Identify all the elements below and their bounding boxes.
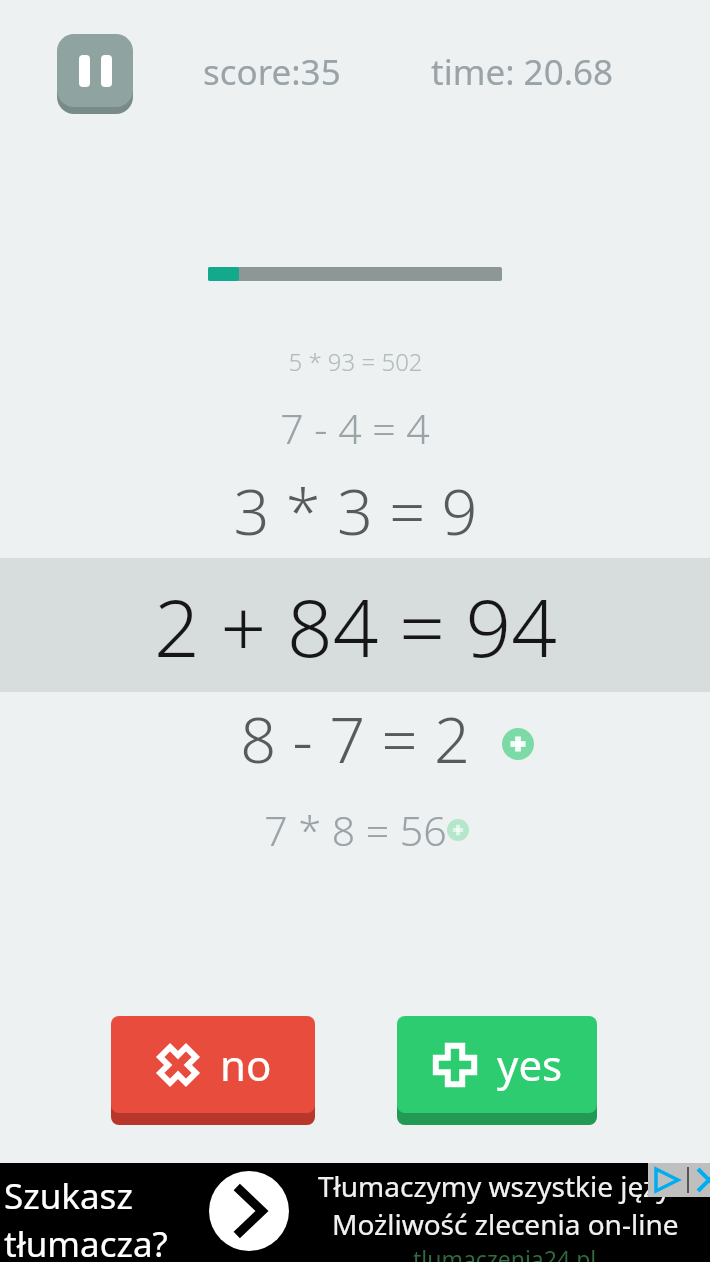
button[interactable]: no xyxy=(111,1016,315,1125)
button[interactable]: Pause xyxy=(57,34,133,114)
staticText: time: 20.68 xyxy=(431,48,614,96)
staticText: 7 * 8 = 56 xyxy=(264,802,447,858)
staticText: tlumaczenia24.pl xyxy=(413,1243,597,1262)
staticText: 2 + 84 = 94 xyxy=(154,571,557,680)
staticText: Szukasz xyxy=(4,1172,133,1220)
staticText: no xyxy=(220,1036,272,1093)
staticText: 5 * 93 = 502 xyxy=(288,345,423,378)
staticText: score:35 xyxy=(203,48,341,96)
button[interactable]: yes xyxy=(397,1016,597,1125)
button[interactable] xyxy=(0,558,710,692)
staticText: Możliwość zlecenia on-line xyxy=(332,1205,679,1243)
button[interactable]: Ad choices xyxy=(648,1163,710,1197)
staticText: yes xyxy=(497,1036,563,1093)
staticText: 3 * 3 = 9 xyxy=(233,468,478,554)
button[interactable]: Szukasz xyxy=(0,1163,710,1262)
staticText: 8 - 7 = 2 xyxy=(240,696,470,782)
staticText: tłumacza? xyxy=(4,1220,168,1262)
staticText: Tłumaczymy wszystkie języki xyxy=(318,1167,693,1205)
staticText: 7 - 4 = 4 xyxy=(280,400,430,456)
